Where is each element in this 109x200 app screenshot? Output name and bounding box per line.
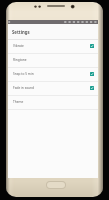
staticText: Snap to 5 min [13, 72, 34, 76]
button[interactable]: Vibrate [8, 40, 98, 54]
button[interactable]: Ringtone [8, 54, 98, 68]
staticText: Settings [12, 29, 30, 35]
staticText: Theme [13, 100, 24, 104]
other: Home [46, 181, 66, 189]
staticText: Vibrate [13, 44, 24, 48]
staticText: Fade in sound [13, 86, 35, 90]
staticText: Ringtone [13, 58, 27, 62]
button[interactable]: Theme [8, 96, 98, 110]
button[interactable]: Snap to 5 min [8, 68, 98, 82]
button[interactable]: Settings [8, 24, 98, 40]
button[interactable]: Fade in sound [8, 82, 98, 96]
